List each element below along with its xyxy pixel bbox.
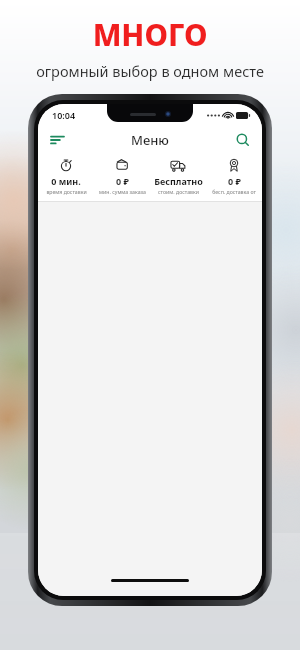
- staticText: Меню: [131, 131, 169, 149]
- staticText: мин. сумма заказа: [99, 188, 146, 195]
- staticText: 10:04: [52, 109, 76, 121]
- button[interactable]: 0 ₽: [206, 157, 262, 195]
- staticText: Бесплатно: [154, 175, 203, 187]
- staticText: стоим. доставки: [158, 188, 199, 195]
- button[interactable]: 0 мин.: [38, 157, 94, 195]
- staticText: 0 ₽: [228, 175, 241, 187]
- staticText: огромный выбор в одном месте: [0, 61, 300, 81]
- button[interactable]: 0 ₽: [94, 157, 150, 195]
- staticText: 0 ₽: [116, 175, 129, 187]
- staticText: 0 мин.: [51, 175, 81, 187]
- staticText: бесп. доставка от: [212, 188, 256, 195]
- button[interactable]: Бесплатно: [150, 157, 206, 195]
- staticText: время доставки: [46, 188, 87, 195]
- button[interactable]: Search: [231, 128, 255, 152]
- staticText: МНОГО: [0, 14, 300, 55]
- button[interactable]: Filter: [45, 128, 69, 152]
